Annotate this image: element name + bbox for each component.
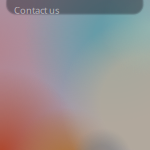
button[interactable]: Contact us	[5, 0, 139, 17]
staticText: Contact us	[14, 4, 59, 16]
